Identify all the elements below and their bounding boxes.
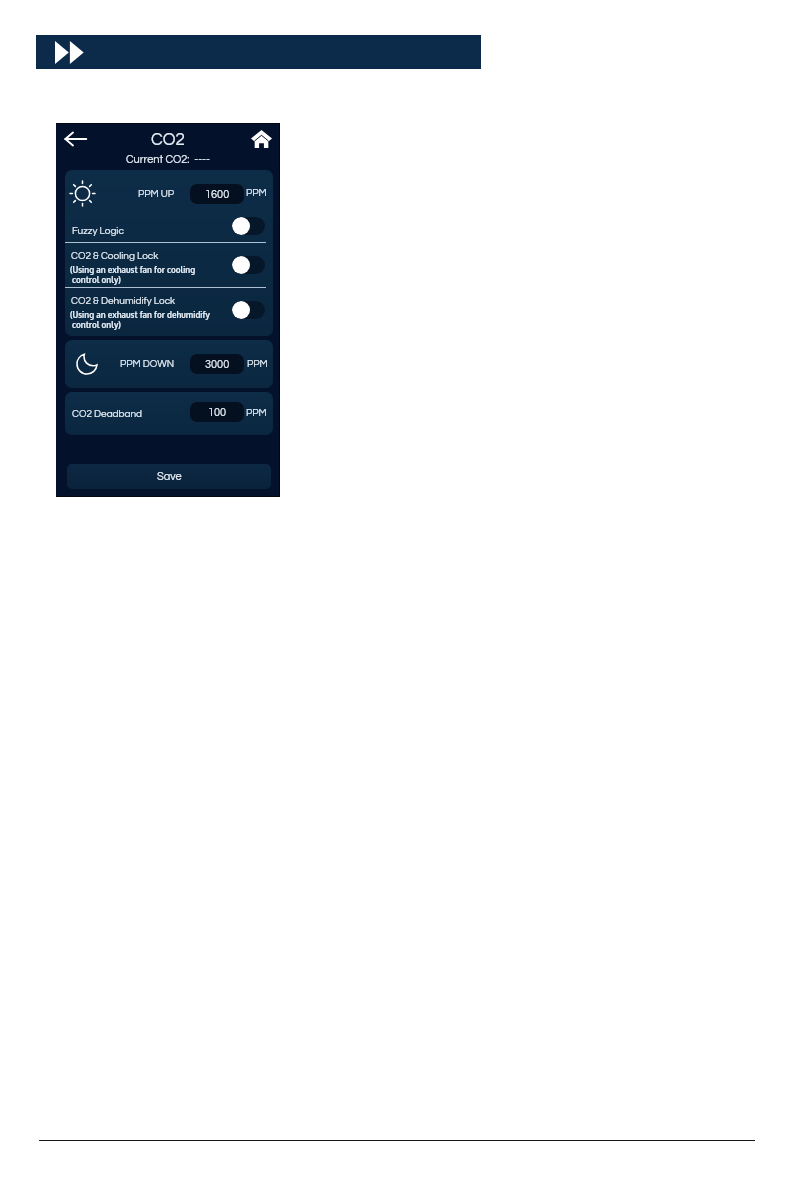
staticText: CO2 Deadband bbox=[72, 409, 143, 419]
staticText: Fuzzy Logic bbox=[72, 226, 124, 236]
button[interactable]: CO2 Deadband bbox=[65, 392, 273, 435]
staticText: 100 bbox=[208, 407, 227, 418]
button[interactable]: Toggle bbox=[232, 301, 265, 319]
button[interactable]: 1600 bbox=[190, 184, 244, 204]
button[interactable]: Home bbox=[251, 130, 272, 148]
button[interactable]: Back bbox=[64, 130, 87, 148]
staticText: control only) bbox=[70, 320, 121, 330]
button[interactable]: Save bbox=[67, 464, 271, 489]
staticText: (Using an exhaust fan for dehumidify bbox=[70, 310, 210, 320]
staticText: 1600 bbox=[205, 189, 230, 200]
button[interactable]: 3000 bbox=[190, 354, 244, 374]
staticText: control only) bbox=[70, 275, 121, 285]
staticText: 3000 bbox=[205, 359, 230, 370]
staticText: CO2 & Dehumidify Lock bbox=[71, 296, 176, 306]
staticText: PPM bbox=[246, 408, 267, 418]
button[interactable]: CO2 & Dehumidify Lock bbox=[65, 288, 272, 332]
staticText: CO2 & Cooling Lock bbox=[71, 251, 159, 261]
button[interactable]: 100 bbox=[190, 402, 244, 422]
staticText: PPM bbox=[246, 188, 267, 198]
staticText: (Using an exhaust fan for cooling bbox=[70, 265, 196, 275]
button[interactable]: Fuzzy Logic bbox=[65, 217, 272, 243]
button[interactable]: CO2 & Cooling Lock bbox=[65, 243, 272, 287]
staticText: CO2 bbox=[56, 131, 280, 505]
staticText: PPM UP bbox=[138, 189, 175, 199]
button[interactable]: PPM DOWN bbox=[65, 340, 273, 388]
button[interactable]: Toggle bbox=[232, 217, 265, 235]
staticText: PPM DOWN bbox=[120, 359, 175, 369]
button[interactable]: PPM UP bbox=[65, 170, 273, 217]
staticText: Current CO2: ---- bbox=[56, 154, 280, 528]
staticText: Save bbox=[157, 471, 182, 482]
staticText: PPM bbox=[247, 359, 268, 369]
button[interactable]: Toggle bbox=[232, 256, 265, 274]
